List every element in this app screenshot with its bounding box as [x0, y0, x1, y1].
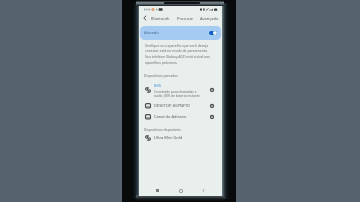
staticText: Verifique se o aparelho que você deseja …	[145, 43, 213, 65]
button[interactable]: Configurações	[209, 114, 215, 120]
staticText: Canal do Adriano	[154, 114, 209, 119]
staticText: Ativado	[144, 30, 159, 36]
button[interactable]: Início	[176, 186, 185, 195]
staticText: Ultra Mini Gold	[154, 135, 222, 140]
button[interactable]: Ultra Mini Gold	[139, 132, 222, 143]
button[interactable]: Voltar	[141, 14, 149, 22]
button[interactable]: 865	[139, 80, 222, 100]
button[interactable]: Voltar	[199, 186, 208, 195]
staticText: Conectado para chamadas e áudio, 80% de …	[154, 90, 202, 98]
button[interactable]: Recentes	[153, 186, 162, 195]
staticText: Dispositivos pareados	[144, 73, 178, 77]
button[interactable]: Canal do Adriano	[139, 111, 222, 122]
staticText: 865	[154, 83, 162, 89]
button[interactable]: Ativado	[140, 26, 221, 40]
staticText: DESKTOP-K6PNFTD	[154, 103, 209, 108]
button[interactable]: Avançado	[200, 16, 219, 21]
staticText: Bluetooth	[151, 16, 170, 21]
staticText: Dispositivos disponíveis	[144, 127, 181, 131]
button[interactable]: Configurações	[209, 87, 215, 93]
button[interactable]: DESKTOP-K6PNFTD	[139, 100, 222, 111]
button[interactable]: Configurações	[209, 103, 215, 109]
button[interactable]: Procurar	[177, 16, 194, 21]
